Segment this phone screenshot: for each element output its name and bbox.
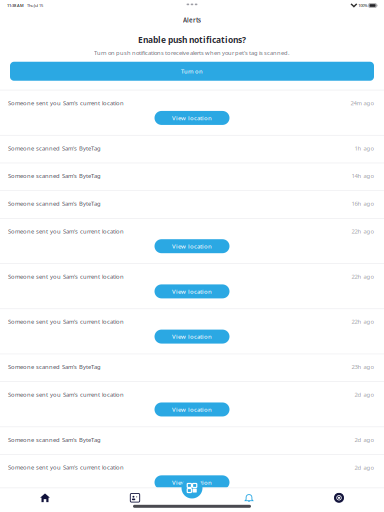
button[interactable]: Settings <box>294 493 384 503</box>
staticText: 2d ago <box>354 436 374 444</box>
staticText: Someone sent you Sam's current location <box>8 463 124 471</box>
staticText: Someone scanned Sam's ByteTag <box>8 144 101 152</box>
staticText: Enable push notifications? <box>138 34 246 45</box>
button[interactable]: Pets <box>90 493 180 503</box>
button[interactable]: View location <box>154 475 229 489</box>
staticText: View location <box>172 242 212 250</box>
staticText: Someone sent you Sam's current location <box>8 227 124 235</box>
staticText: Someone sent you Sam's current location <box>8 272 124 280</box>
staticText: Someone sent you Sam's current location <box>8 390 124 398</box>
staticText: 11:38 AM <box>7 3 24 8</box>
staticText: View location <box>172 405 212 413</box>
staticText: 22h ago <box>351 318 374 326</box>
button[interactable]: View location <box>154 111 229 125</box>
button[interactable]: View location <box>154 284 229 298</box>
staticText: Turn on <box>181 67 203 75</box>
button[interactable]: View location <box>154 239 229 253</box>
staticText: 22h ago <box>351 272 374 280</box>
staticText: 23h ago <box>351 363 374 371</box>
button[interactable]: View location <box>154 330 229 344</box>
staticText: 1h ago <box>354 144 374 152</box>
button[interactable]: Home <box>0 493 90 503</box>
staticText: Turn on push notifications to receive al… <box>94 49 290 57</box>
staticText: 24m ago <box>350 99 374 107</box>
button[interactable]: View location <box>154 402 229 416</box>
staticText: View location <box>172 114 212 122</box>
staticText: Someone scanned Sam's ByteTag <box>8 200 101 207</box>
button[interactable]: Alerts <box>204 493 294 503</box>
button[interactable]: Scan tag <box>181 477 202 498</box>
staticText: View location <box>172 287 212 295</box>
staticText: Someone scanned Sam's ByteTag <box>8 363 101 371</box>
staticText: Someone scanned Sam's ByteTag <box>8 172 101 180</box>
staticText: Someone sent you Sam's current location <box>8 99 124 107</box>
staticText: 100% <box>357 3 367 8</box>
button[interactable]: Turn on <box>10 62 374 81</box>
staticText: 2d ago <box>354 463 374 471</box>
staticText: 2d ago <box>354 390 374 398</box>
staticText: View location <box>172 478 212 486</box>
staticText: Alerts <box>183 16 201 24</box>
staticText: View location <box>172 333 212 341</box>
staticText: Someone sent you Sam's current location <box>8 318 124 325</box>
staticText: Someone scanned Sam's ByteTag <box>8 436 101 444</box>
staticText: 16h ago <box>351 199 374 207</box>
staticText: 14h ago <box>351 172 374 180</box>
staticText: 22h ago <box>351 227 374 235</box>
staticText: Thu Jul 15 <box>24 3 43 8</box>
